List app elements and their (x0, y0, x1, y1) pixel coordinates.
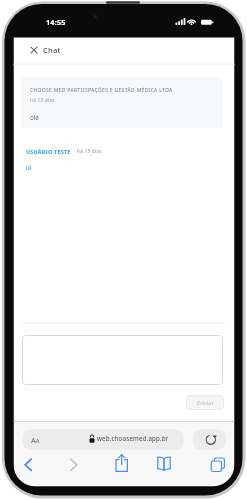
staticText: AA (31, 435, 40, 445)
staticText: há 15 dias (30, 97, 55, 104)
staticText: oi (26, 163, 32, 171)
button[interactable] (112, 454, 130, 472)
button[interactable] (23, 430, 184, 450)
button[interactable] (22, 335, 223, 385)
button[interactable] (21, 77, 223, 128)
button[interactable] (65, 455, 82, 472)
button[interactable] (193, 430, 226, 450)
staticText: 14:55 (46, 17, 66, 27)
staticText: há 15 dias (77, 148, 102, 155)
staticText: Chat (43, 45, 61, 55)
button[interactable] (156, 455, 172, 472)
button[interactable]: Enviar (186, 395, 224, 410)
button[interactable] (27, 43, 41, 57)
button[interactable] (210, 457, 226, 473)
staticText: Enviar (197, 399, 214, 407)
staticText: web.choosemed.app.br (97, 434, 169, 442)
staticText: CHOOSE MED PARTICIPAÇÕES E GESTÃO MÉDICA… (30, 87, 173, 94)
button[interactable] (18, 455, 35, 472)
staticText: USUÁRIO TESTE (26, 148, 71, 155)
staticText: ola (30, 113, 39, 121)
